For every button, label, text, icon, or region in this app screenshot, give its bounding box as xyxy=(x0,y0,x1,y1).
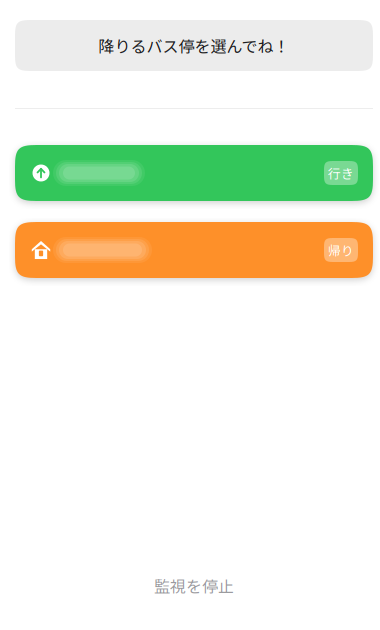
staticText: 監視を停止 xyxy=(154,574,234,597)
button[interactable]: 監視を停止 xyxy=(15,564,373,607)
staticText: 行き xyxy=(328,164,354,182)
button[interactable]: 行き xyxy=(15,145,373,201)
staticText: 帰り xyxy=(328,241,354,259)
button[interactable]: 帰り xyxy=(15,222,373,278)
staticText: 降りるバス停を選んでね！ xyxy=(98,34,289,57)
